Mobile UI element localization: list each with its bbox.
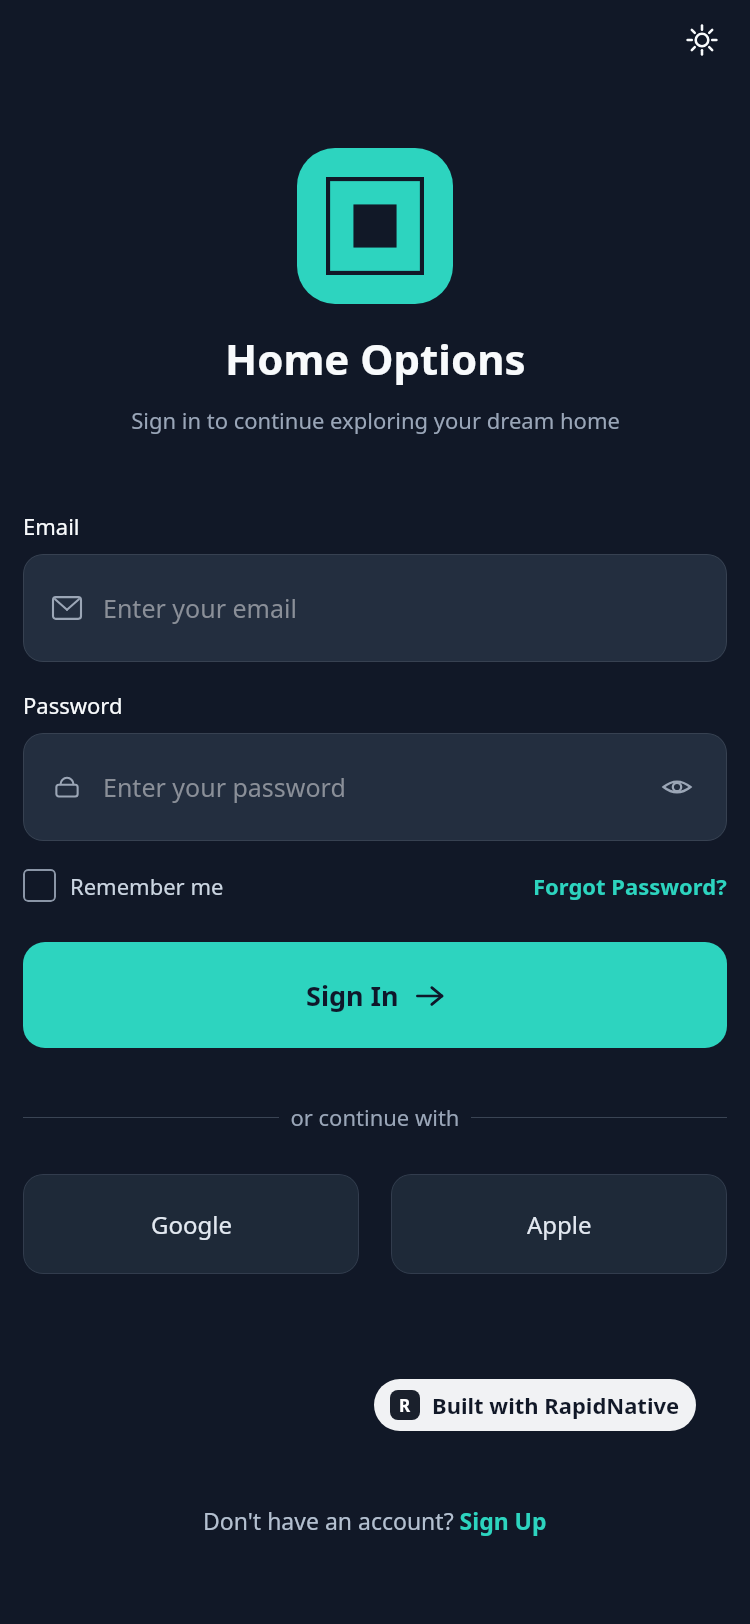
staticText: Email xyxy=(23,511,80,541)
button[interactable]: Forgot Password? xyxy=(533,871,727,901)
staticText: Home Options xyxy=(225,330,526,387)
staticText: Remember me xyxy=(70,871,224,901)
staticText: or continue with xyxy=(279,1102,471,1132)
button[interactable]: Enter your password xyxy=(23,733,727,841)
staticText: Sign In xyxy=(306,977,399,1014)
staticText: Don't have an account? Sign Up xyxy=(203,1505,547,1536)
button[interactable]: Toggle theme xyxy=(676,14,728,66)
button[interactable]: Sign In xyxy=(23,942,727,1048)
button[interactable]: Apple xyxy=(391,1174,727,1274)
staticText: R xyxy=(399,1394,411,1417)
staticText: Apple xyxy=(527,1208,592,1241)
button[interactable]: Show password xyxy=(657,767,697,807)
button[interactable]: Remember me xyxy=(23,869,224,902)
staticText: Password xyxy=(23,690,123,720)
staticText: Google xyxy=(151,1208,232,1241)
button[interactable]: Enter your email xyxy=(23,554,727,662)
staticText: Sign in to continue exploring your dream… xyxy=(131,405,620,435)
staticText: Forgot Password? xyxy=(533,871,727,901)
button[interactable]: R xyxy=(374,1379,696,1431)
staticText: Built with RapidNative xyxy=(432,1390,680,1420)
button[interactable]: Don't have an account? Sign Up xyxy=(203,1505,547,1536)
staticText: Enter your email xyxy=(103,591,297,625)
button[interactable]: Google xyxy=(23,1174,359,1274)
staticText: Enter your password xyxy=(103,770,346,804)
